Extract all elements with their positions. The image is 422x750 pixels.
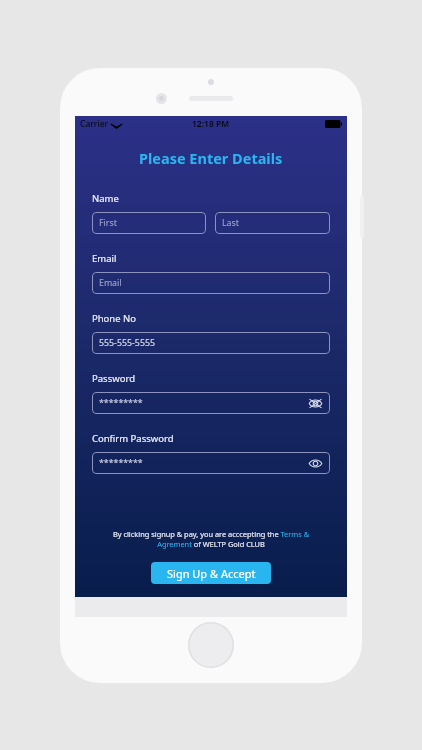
button[interactable]: First [92,212,206,234]
staticText: Name [92,192,119,205]
staticText: ********* [99,457,143,469]
staticText: 555-555-5555 [99,337,155,349]
button[interactable]: ********* [92,392,330,414]
staticText: Please Enter Details [139,148,283,168]
staticText: Carrier [80,118,109,130]
staticText: ********* [99,397,143,409]
staticText: Password [92,372,135,385]
other: Hide password [308,398,323,409]
staticText: By clicking signup & pay, you are acccep… [95,529,327,549]
staticText: 12:18 PM [192,118,230,130]
staticText: First [99,217,117,229]
staticText: Sign Up & Accept [167,566,256,581]
other: Show password [308,458,323,469]
button[interactable]: ********* [92,452,330,474]
staticText: Email [92,252,117,265]
button[interactable]: Sign Up & Accept [151,562,271,584]
staticText: Confirm Password [92,432,174,445]
button[interactable]: Last [215,212,330,234]
button[interactable]: 555-555-5555 [92,332,330,354]
button[interactable]: Email [92,272,330,294]
other: Home [188,622,234,668]
staticText: Last [222,217,239,229]
staticText: Email [99,277,122,289]
staticText: Phone No [92,312,137,325]
